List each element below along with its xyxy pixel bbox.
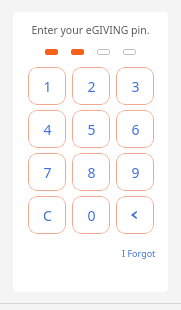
button[interactable]: 3 [116,67,154,105]
button[interactable]: 8 [72,153,110,191]
staticText: I Forgot [122,247,156,259]
staticText: 0 [87,206,96,225]
button[interactable]: 0 [72,196,110,234]
staticText: 3 [131,77,140,96]
button[interactable]: 6 [116,110,154,148]
button[interactable]: 7 [28,153,66,191]
button[interactable]: Backspace [116,196,154,234]
button[interactable]: 5 [72,110,110,148]
staticText: 1 [43,77,52,96]
staticText: 8 [87,163,96,182]
button[interactable]: Clear [28,196,66,234]
staticText: 9 [131,163,140,182]
staticText: 5 [87,120,96,139]
staticText: C [43,206,52,225]
staticText: 2 [87,77,96,96]
staticText: 7 [43,163,52,182]
staticText: Enter your eGIVING pin. [31,23,150,37]
button[interactable]: I Forgot [110,244,168,262]
button[interactable]: 1 [28,67,66,105]
staticText: 6 [131,120,140,139]
button[interactable]: 4 [28,110,66,148]
button[interactable]: 2 [72,67,110,105]
button[interactable]: 9 [116,153,154,191]
staticText: 4 [43,120,52,139]
